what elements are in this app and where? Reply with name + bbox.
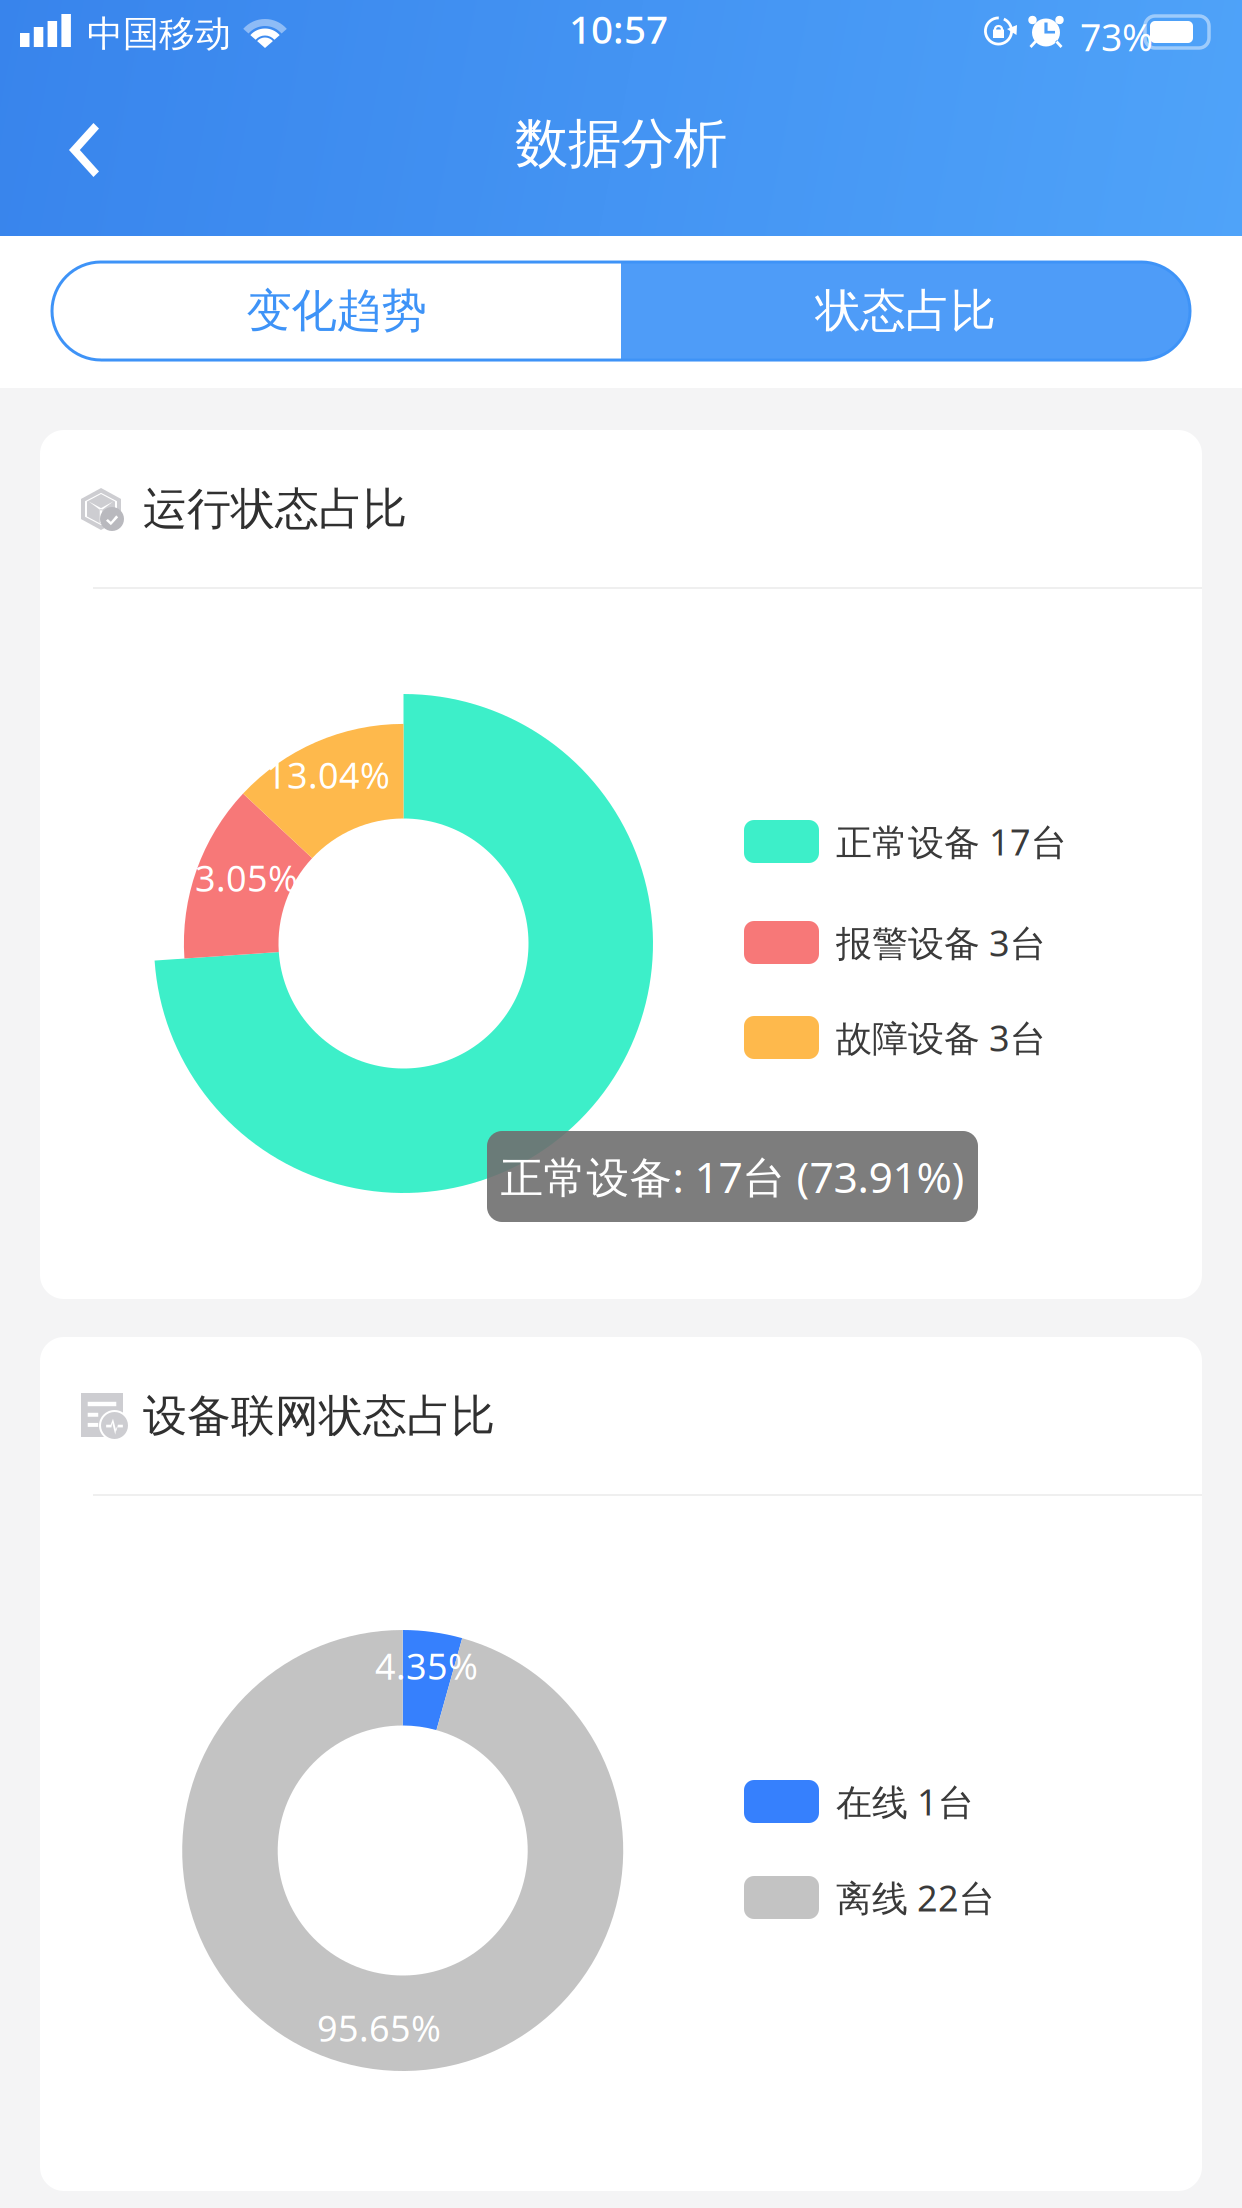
staticText: 正常设备: 17台 (73.91%) (500, 1148, 964, 1205)
staticText: 73% (1080, 12, 1153, 62)
staticText: 13.05% (174, 854, 298, 902)
staticText: 4.35% (375, 1642, 478, 1690)
staticText: 变化趋势 (246, 283, 426, 339)
staticText: 故障设备 3台 (836, 1014, 1046, 1061)
staticText: 中国移动 (87, 12, 231, 56)
staticText: 95.65% (317, 2004, 441, 2052)
staticText: 运行状态占比 (143, 482, 407, 536)
staticText: 离线 22台 (836, 1874, 995, 1921)
staticText: 数据分析 (515, 111, 727, 176)
staticText: 10:57 (569, 3, 668, 54)
staticText: 设备联网状态占比 (143, 1389, 495, 1443)
staticText: 正常设备 17台 (836, 818, 1067, 865)
staticText: 13.04% (266, 751, 390, 799)
staticText: 状态占比 (815, 283, 995, 339)
button[interactable]: 变化趋势 (52, 262, 621, 360)
staticText: 在线 1台 (836, 1778, 974, 1825)
button[interactable]: 状态占比 (621, 262, 1190, 360)
button[interactable]: 返回 (24, 90, 144, 210)
staticText: 报警设备 3台 (836, 919, 1046, 966)
